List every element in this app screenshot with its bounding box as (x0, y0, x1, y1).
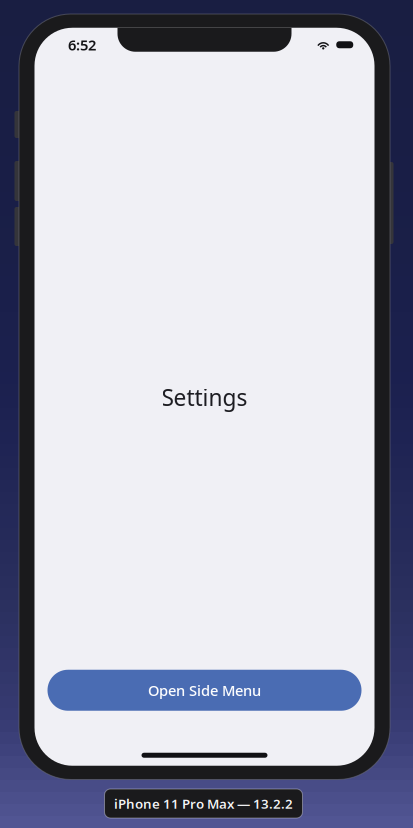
staticText: Open Side Menu (148, 680, 261, 700)
staticText: 6:52 (68, 35, 96, 54)
staticText: iPhone 11 Pro Max — 13.2.2 (114, 795, 293, 812)
staticText: Settings (161, 382, 247, 412)
button[interactable]: Open Side Menu (47, 670, 361, 711)
